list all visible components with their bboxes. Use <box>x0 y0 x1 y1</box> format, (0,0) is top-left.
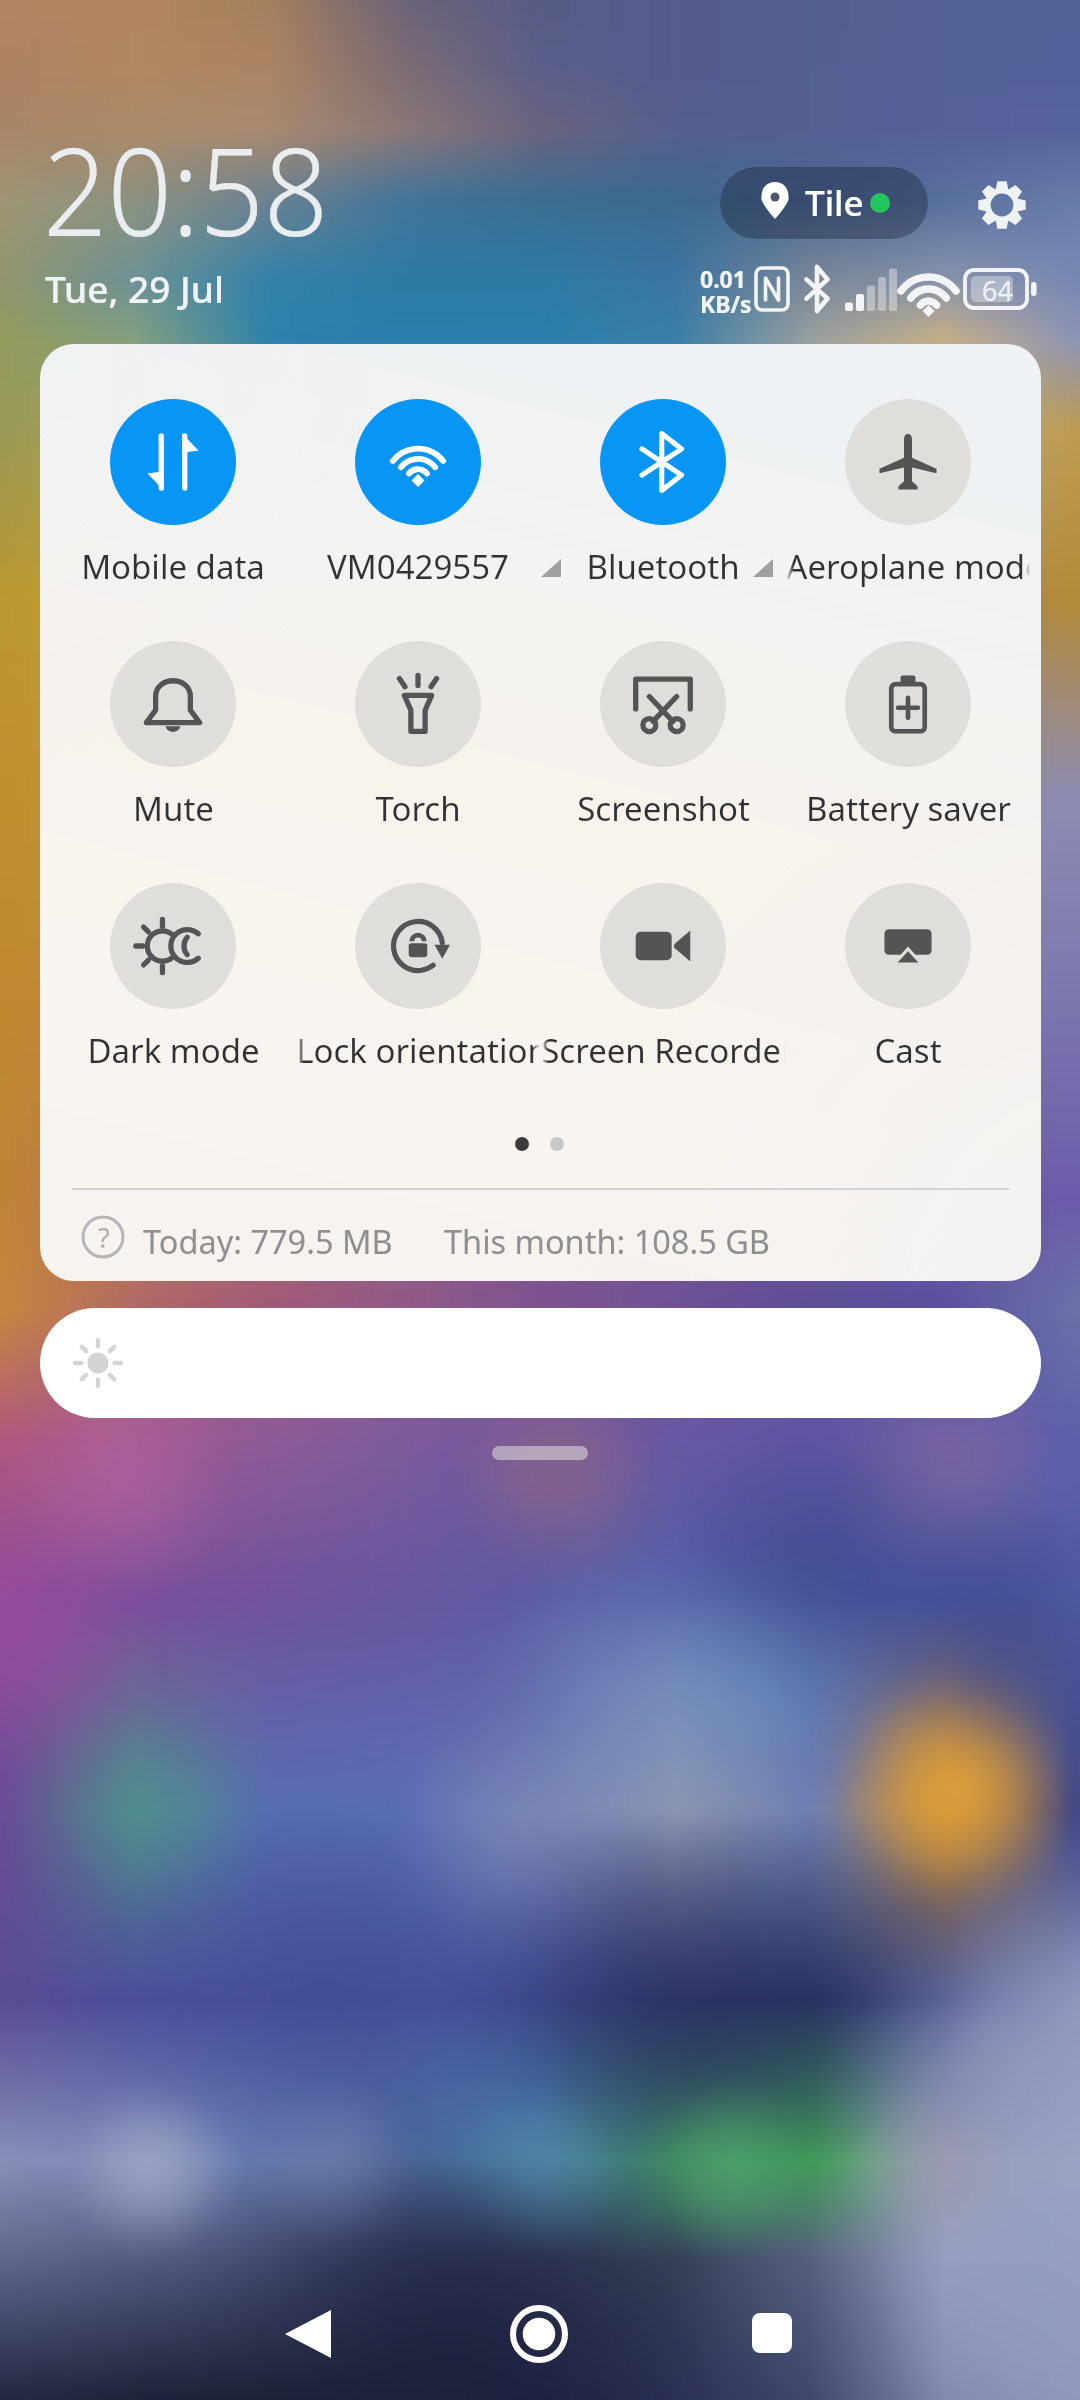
staticText: Dark mode <box>87 1028 260 1073</box>
staticText: Lock orientation <box>296 1028 540 1073</box>
button[interactable]: Recents <box>752 2313 792 2353</box>
staticText: Mute <box>133 786 214 831</box>
button[interactable]: Tile <box>720 167 928 239</box>
staticText: Today: 779.5 MB <box>143 1219 393 1263</box>
staticText: This month: 108.5 GB <box>444 1219 770 1263</box>
button[interactable]: Brightness <box>40 1308 1041 1418</box>
staticText: Mobile data <box>81 544 265 589</box>
staticText: Cast <box>874 1028 942 1073</box>
staticText: Bluetooth <box>586 544 740 589</box>
button[interactable]: Home <box>510 2305 568 2363</box>
staticText: 64 <box>982 272 1013 308</box>
staticText: Aeroplane mode <box>786 544 1030 589</box>
staticText: 0.01 <box>700 263 746 291</box>
staticText: KB/s <box>700 288 752 316</box>
staticText: VM0429557 <box>327 544 509 589</box>
staticText: Tue, 29 Jul <box>45 263 224 313</box>
button[interactable]: Settings <box>968 171 1036 239</box>
button[interactable]: Back <box>285 2310 331 2358</box>
staticText: Screenshot <box>577 786 750 831</box>
staticText: 20:58 <box>43 106 329 272</box>
staticText: ? <box>98 1219 110 1253</box>
staticText: Tile <box>805 179 864 227</box>
staticText: Torch <box>375 786 461 831</box>
staticText: Battery saver <box>806 786 1011 831</box>
staticText: Screen Recorder <box>541 1028 785 1073</box>
